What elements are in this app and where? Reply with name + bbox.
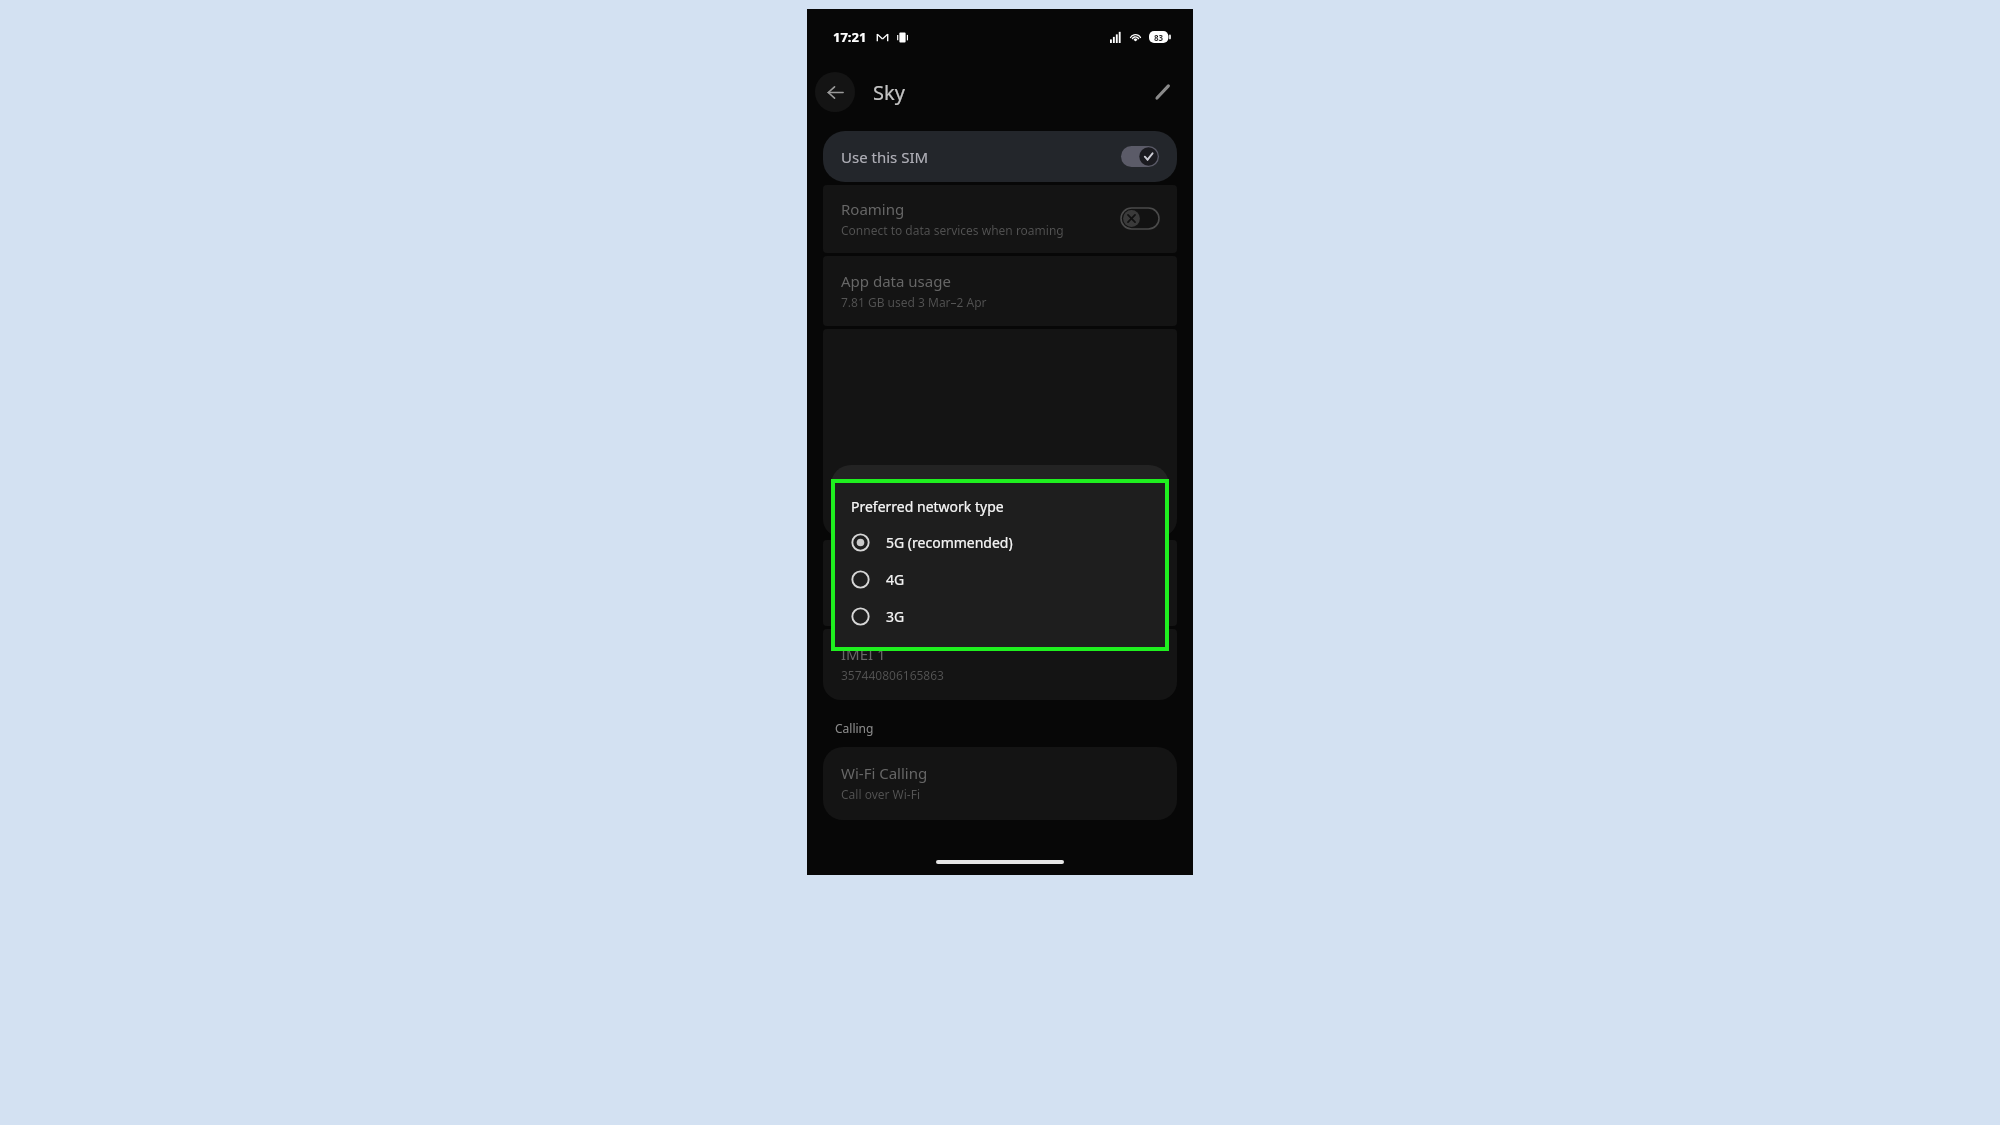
staticText: 17:21 — [833, 28, 867, 46]
button[interactable]: 4G — [851, 565, 1153, 594]
staticText: sky_gb-75000000003.10 — [841, 578, 976, 594]
staticText: 2025-11-26 — [841, 594, 904, 610]
button[interactable]: App data usage — [823, 256, 1177, 326]
button[interactable]: Operator settings version — [823, 540, 1177, 626]
button[interactable]: Use this SIM — [823, 131, 1177, 182]
staticText: Roaming — [841, 199, 905, 219]
staticText: App data usage — [841, 271, 951, 291]
staticText: Sky — [873, 79, 905, 106]
staticText: Calling — [835, 720, 874, 736]
staticText: Preferred network type — [851, 497, 1004, 516]
button[interactable]: Roaming — [823, 185, 1177, 253]
button[interactable]: Back — [815, 72, 855, 112]
staticText: Use this SIM — [841, 147, 929, 167]
button[interactable]: 3G — [851, 602, 1153, 631]
button[interactable]: Wi-Fi Calling — [823, 747, 1177, 820]
button[interactable]: Edit — [1143, 72, 1183, 112]
staticText: 357440806165863 — [841, 667, 944, 683]
staticText: 7.81 GB used 3 Mar–2 Apr — [841, 294, 987, 310]
staticText: Call over Wi-Fi — [841, 786, 921, 802]
button[interactable]: IMEI 1 — [823, 629, 1177, 700]
staticText: 83 — [1154, 32, 1164, 43]
staticText: 5G (recommended) — [886, 533, 1013, 552]
staticText: IMEI 1 — [841, 644, 886, 664]
staticText: Operator settings version — [841, 555, 1021, 575]
staticText: Connect to data services when roaming — [841, 222, 1064, 238]
staticText: Wi-Fi Calling — [841, 763, 928, 783]
staticText: 4G — [886, 570, 905, 589]
button[interactable]: 5G (recommended) — [851, 528, 1153, 557]
staticText: 3G — [886, 607, 905, 626]
